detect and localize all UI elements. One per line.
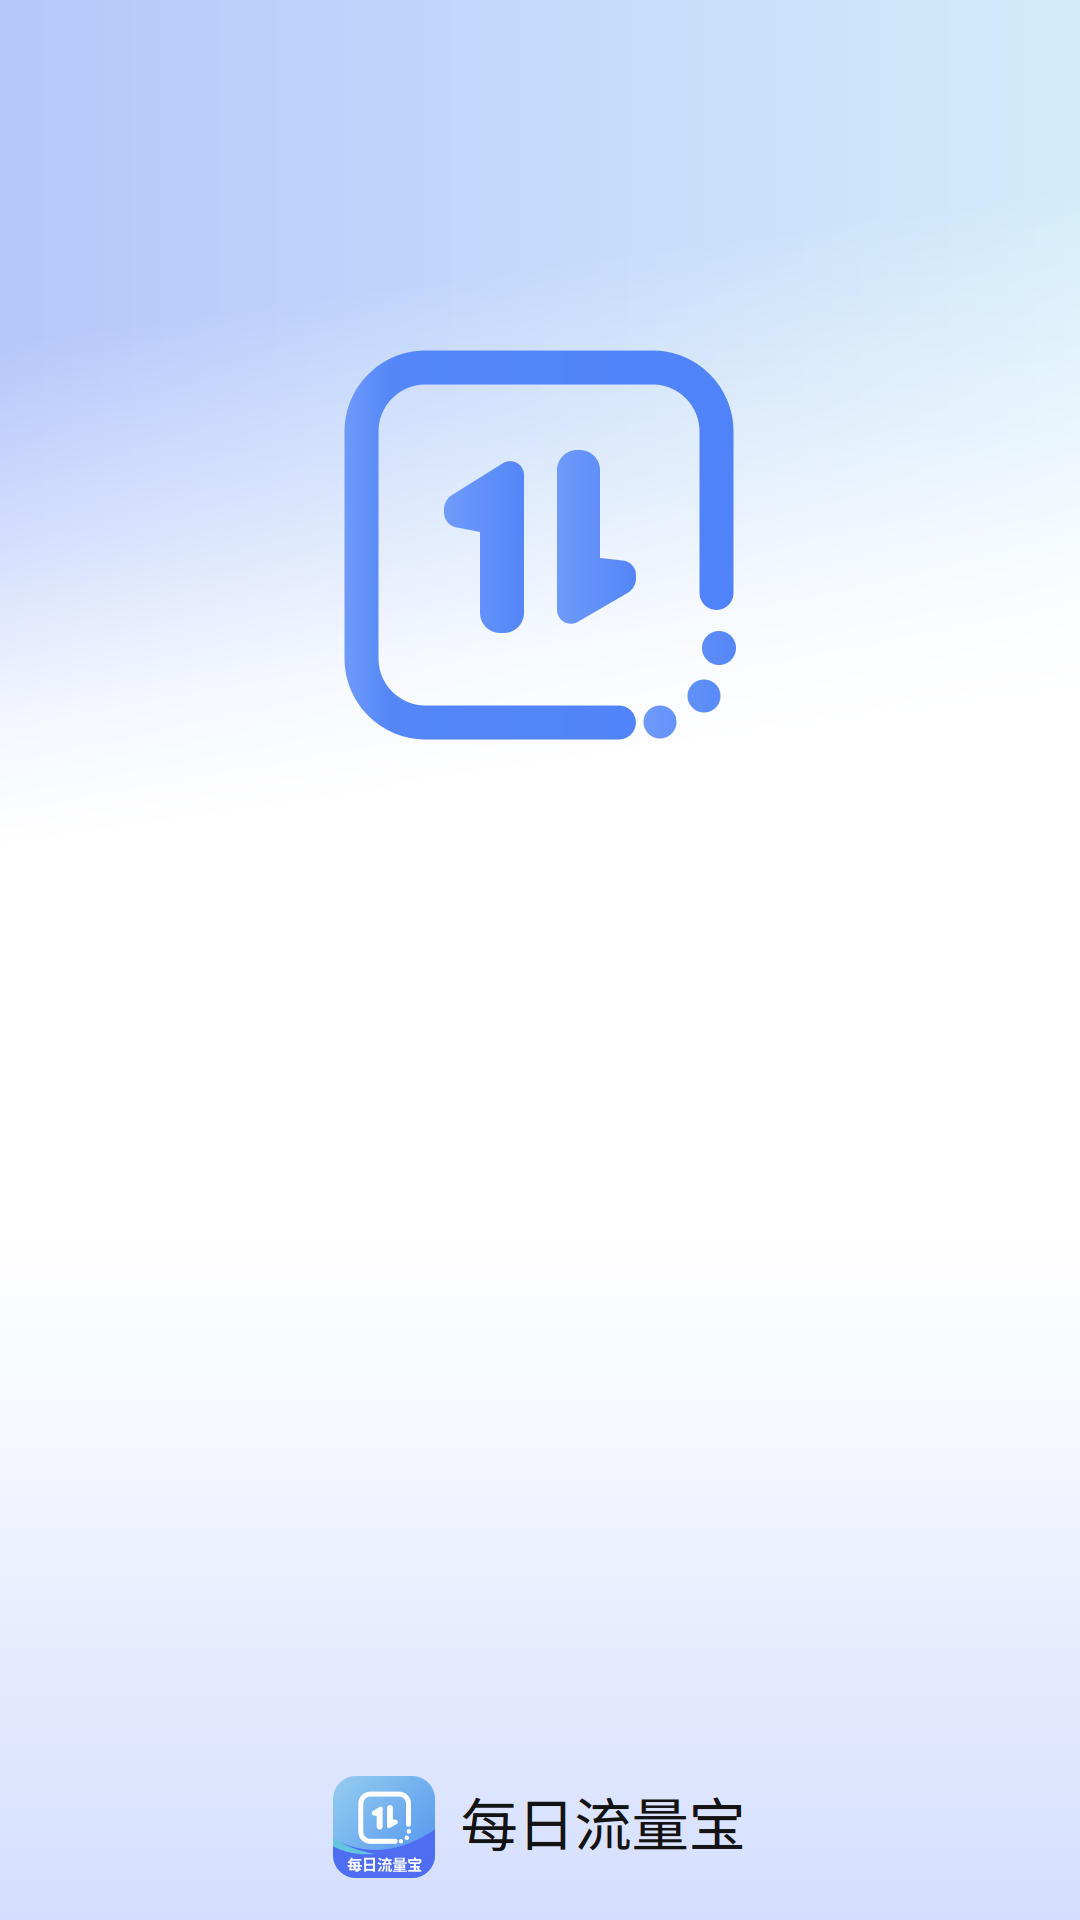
staticText: 每日流量宝 [347,1853,422,1875]
staticText: 每日流量宝 [460,1779,745,1862]
